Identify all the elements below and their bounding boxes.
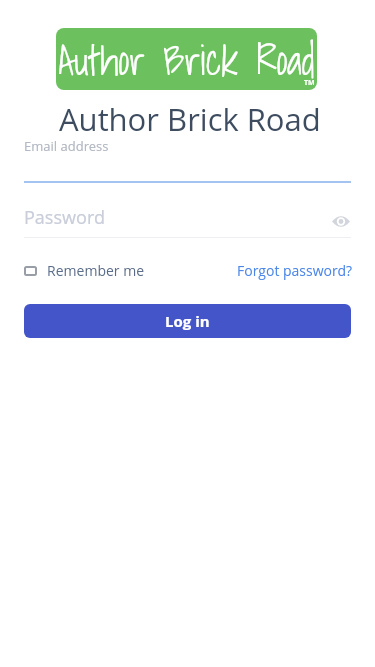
button[interactable]: Email address xyxy=(24,137,351,183)
staticText: Author Brick Road xyxy=(59,98,321,140)
button[interactable]: Remember me xyxy=(24,261,145,280)
staticText: Email address xyxy=(24,137,109,155)
staticText: Forgot password? xyxy=(237,261,353,280)
staticText: Author Brick Road xyxy=(58,28,315,90)
button[interactable] xyxy=(332,216,350,227)
staticText: Remember me xyxy=(47,261,145,280)
button[interactable]: Password xyxy=(24,205,351,238)
button[interactable]: Log in xyxy=(24,304,351,338)
staticText: TM xyxy=(304,78,315,88)
staticText: Log in xyxy=(165,311,210,331)
button[interactable]: Forgot password? xyxy=(237,261,353,280)
staticText: Password xyxy=(24,205,105,230)
